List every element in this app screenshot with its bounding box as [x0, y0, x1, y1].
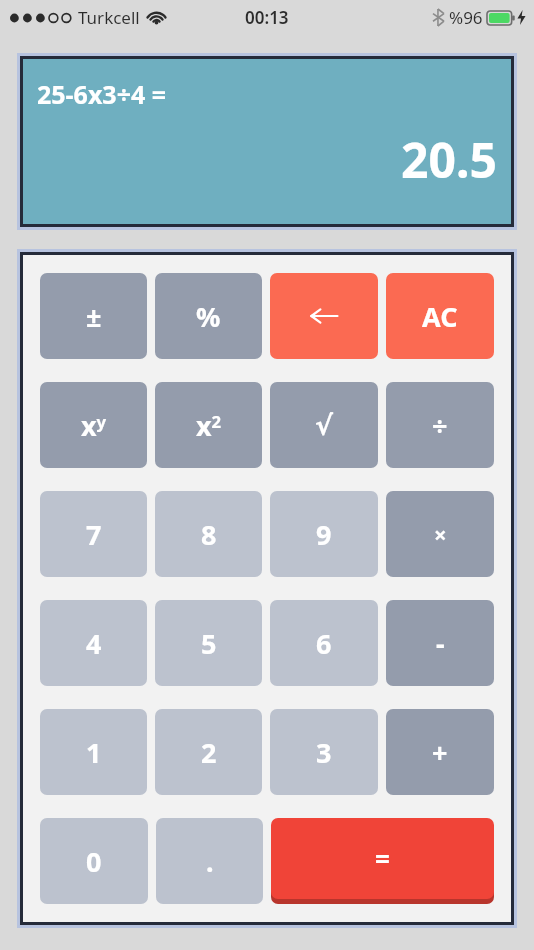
button[interactable]: = [271, 818, 494, 904]
staticText: % [196, 298, 221, 335]
staticText: ± [86, 298, 102, 335]
button[interactable]: 2 [155, 709, 262, 795]
staticText: 6 [316, 625, 332, 662]
button[interactable]: xy [40, 382, 147, 468]
staticText: 5 [201, 625, 217, 662]
button[interactable]: . [156, 818, 263, 904]
button[interactable]: Backspace [270, 273, 378, 359]
staticText: + [432, 734, 448, 771]
staticText: Turkcell [78, 6, 140, 29]
button[interactable]: × [386, 491, 494, 577]
staticText: x2 [196, 407, 222, 444]
button[interactable]: 7 [40, 491, 147, 577]
staticText: √ [315, 410, 334, 441]
button[interactable]: 0 [40, 818, 148, 904]
staticText: 25-6x3÷4 = [37, 77, 167, 111]
staticText: 8 [201, 516, 217, 553]
staticText: 1 [86, 734, 102, 771]
staticText: 3 [316, 734, 332, 771]
staticText: xy [81, 407, 107, 444]
button[interactable]: 4 [40, 600, 147, 686]
button[interactable]: x2 [155, 382, 262, 468]
staticText: . [206, 843, 214, 880]
button[interactable]: 8 [155, 491, 262, 577]
staticText: = [375, 841, 390, 876]
staticText: 2 [201, 734, 217, 771]
button[interactable]: AC [386, 273, 494, 359]
staticText: 0 [86, 843, 102, 880]
staticText: AC [422, 298, 458, 335]
staticText: ÷ [432, 407, 448, 444]
button[interactable]: + [386, 709, 494, 795]
button[interactable]: % [155, 273, 262, 359]
button[interactable]: ± [40, 273, 147, 359]
button[interactable]: ÷ [386, 382, 494, 468]
staticText: - [436, 625, 445, 662]
staticText: 7 [86, 516, 102, 553]
button[interactable]: 3 [270, 709, 378, 795]
button[interactable]: 6 [270, 600, 378, 686]
button[interactable]: 5 [155, 600, 262, 686]
staticText: 20.5 [401, 127, 497, 192]
staticText: 00:13 [245, 6, 289, 29]
button[interactable]: √ [270, 382, 378, 468]
button[interactable]: - [386, 600, 494, 686]
staticText: %96 [449, 6, 483, 29]
button[interactable]: 1 [40, 709, 147, 795]
staticText: 9 [316, 516, 332, 553]
staticText: 4 [86, 625, 102, 662]
button[interactable]: 9 [270, 491, 378, 577]
staticText: × [434, 519, 447, 549]
